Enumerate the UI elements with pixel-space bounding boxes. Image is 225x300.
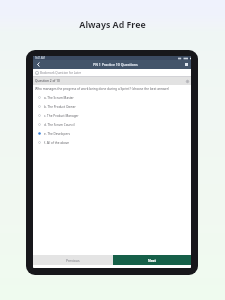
staticText: Always Ad Free: [0, 19, 225, 31]
button[interactable]: b. The Product Owner: [33, 102, 191, 111]
staticText: c. The Product Manager: [44, 114, 79, 118]
staticText: Who manages the progress of work being d…: [35, 87, 170, 91]
button[interactable]: Bookmark Question for Later: [33, 69, 191, 76]
button[interactable]: c. The Product Manager: [33, 111, 191, 120]
staticText: Next: [148, 258, 156, 262]
button[interactable]: Previous: [33, 255, 113, 265]
button[interactable]: More options: [183, 61, 190, 68]
button[interactable]: Back: [34, 60, 43, 69]
button[interactable]: Question 2 of 10: [33, 77, 191, 85]
staticText: Question 2 of 10: [35, 79, 60, 83]
button[interactable]: a. The Scrum Master: [33, 93, 191, 102]
staticText: f. All of the above: [44, 141, 70, 145]
button[interactable]: d. The Scrum Council: [33, 120, 191, 129]
button[interactable]: e. The Developers: [33, 129, 191, 138]
button[interactable]: f. All of the above: [33, 138, 191, 147]
staticText: e. The Developers: [44, 132, 70, 136]
staticText: d. The Scrum Council: [44, 123, 75, 127]
staticText: Previous: [66, 258, 80, 262]
staticText: Bookmark Question for Later: [40, 71, 82, 75]
staticText: b. The Product Owner: [44, 105, 76, 109]
staticText: PN 1 Practice 10 Questions: [93, 62, 138, 67]
staticText: a. The Scrum Master: [44, 96, 74, 100]
button[interactable]: Next: [113, 255, 191, 265]
staticText: 9:41 AM: [35, 56, 45, 60]
